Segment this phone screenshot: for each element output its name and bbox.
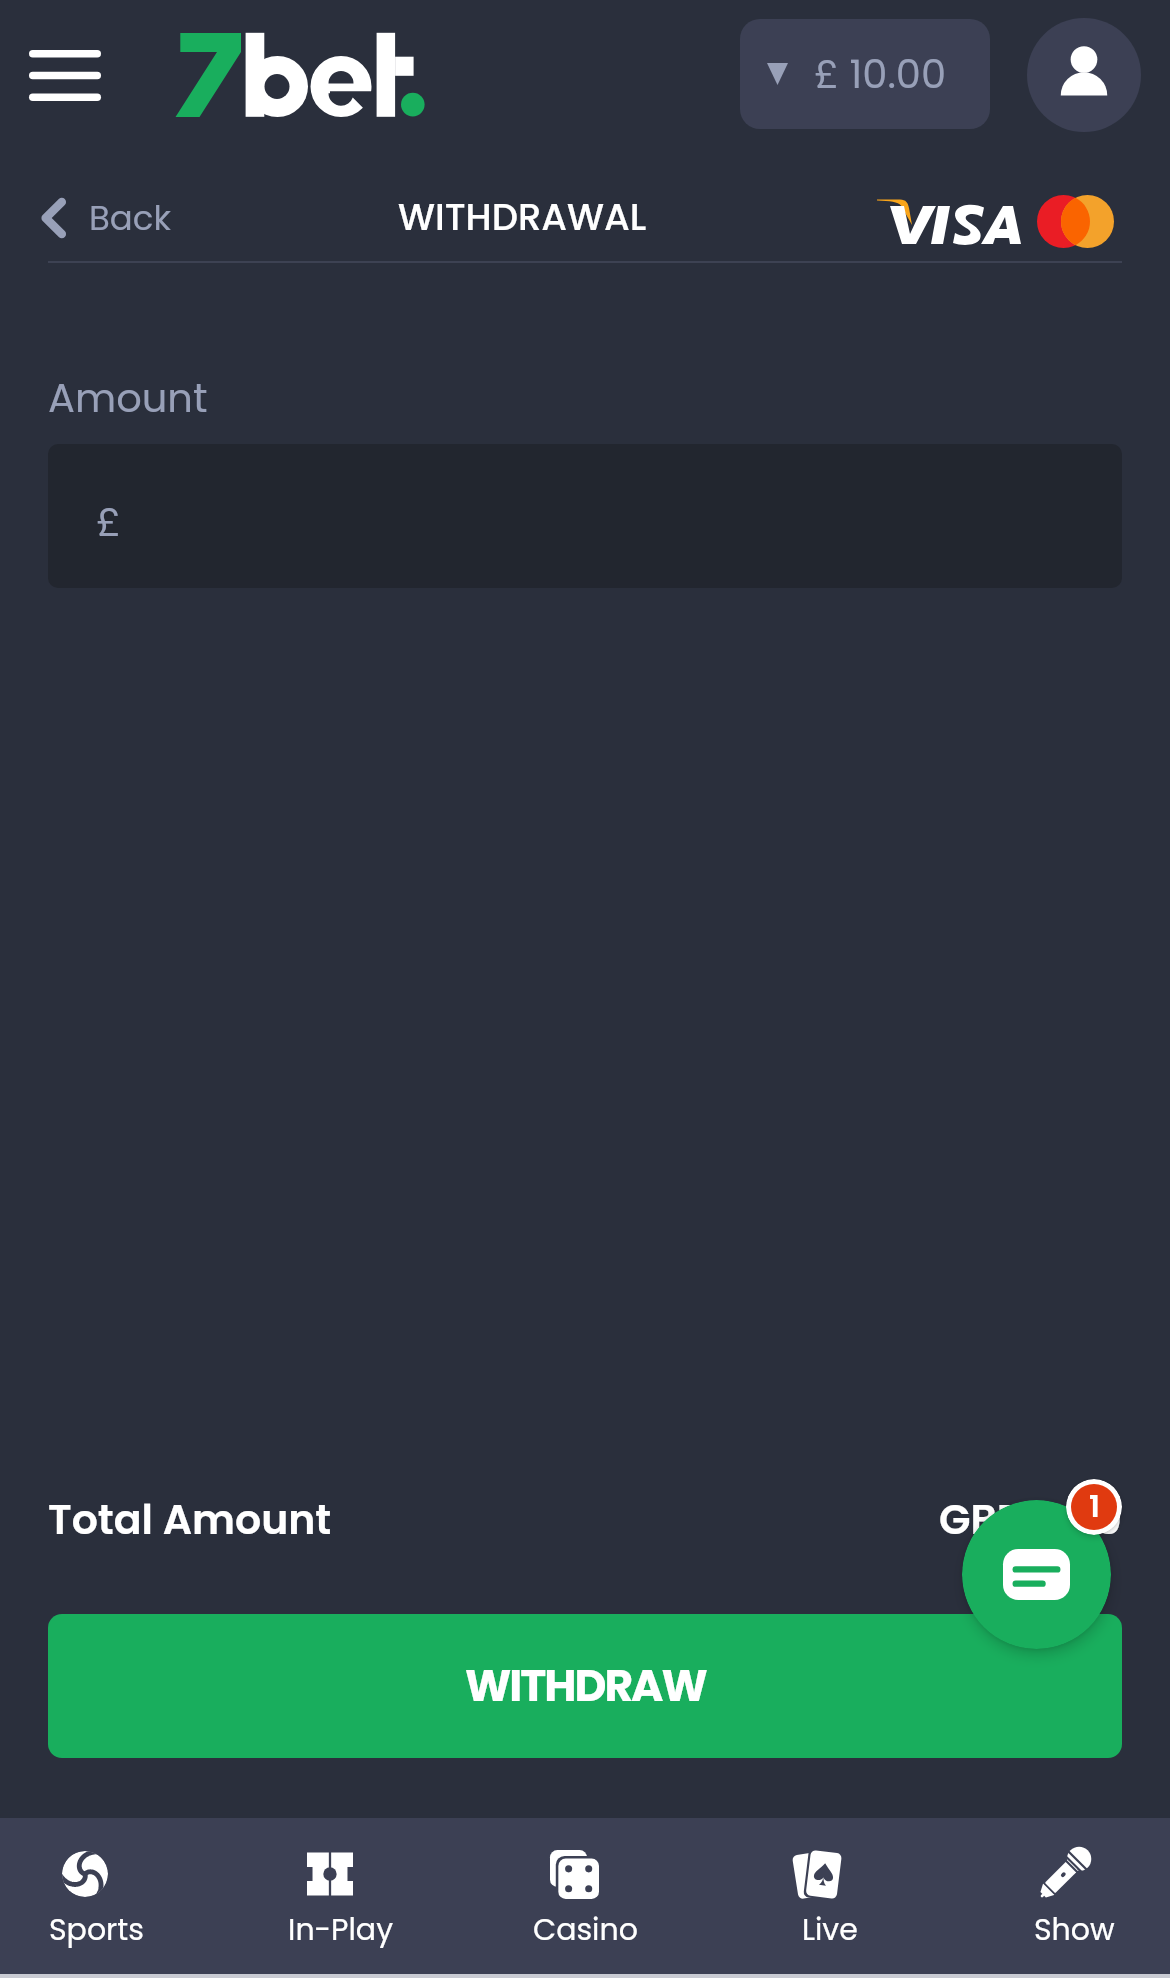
staticText: Back	[89, 194, 171, 242]
staticText: £ 10.00	[814, 46, 947, 102]
staticText: 1	[1089, 1486, 1100, 1528]
staticText: Total Amount	[48, 1491, 332, 1548]
staticText: Amount	[48, 370, 208, 426]
staticText: WITHDRAW	[465, 1655, 706, 1717]
button[interactable]: In-Play	[266, 1818, 416, 1951]
staticText: In-Play	[288, 1909, 394, 1951]
button[interactable]: £ 10.00	[740, 19, 990, 129]
staticText: Sports	[49, 1909, 144, 1951]
staticText: WITHDRAWAL	[398, 191, 647, 243]
staticText: £	[96, 494, 121, 550]
staticText: Casino	[533, 1909, 638, 1951]
button[interactable]: Casino	[510, 1818, 660, 1951]
staticText: GBP 0.00	[939, 1491, 1122, 1548]
button[interactable]: Back	[41, 194, 171, 242]
button[interactable]: Sports	[21, 1818, 171, 1951]
button[interactable]: Menu	[11, 21, 119, 129]
button[interactable]: 7bet home	[175, 31, 425, 118]
staticText: Show	[1034, 1909, 1115, 1951]
button[interactable]: £	[48, 444, 1122, 588]
button[interactable]: Live	[755, 1818, 905, 1951]
staticText: Live	[802, 1909, 858, 1951]
button[interactable]: WITHDRAW	[48, 1614, 1122, 1758]
button[interactable]: Account	[1027, 18, 1141, 132]
button[interactable]: Show	[999, 1818, 1149, 1951]
button[interactable]: Chat	[962, 1500, 1111, 1649]
